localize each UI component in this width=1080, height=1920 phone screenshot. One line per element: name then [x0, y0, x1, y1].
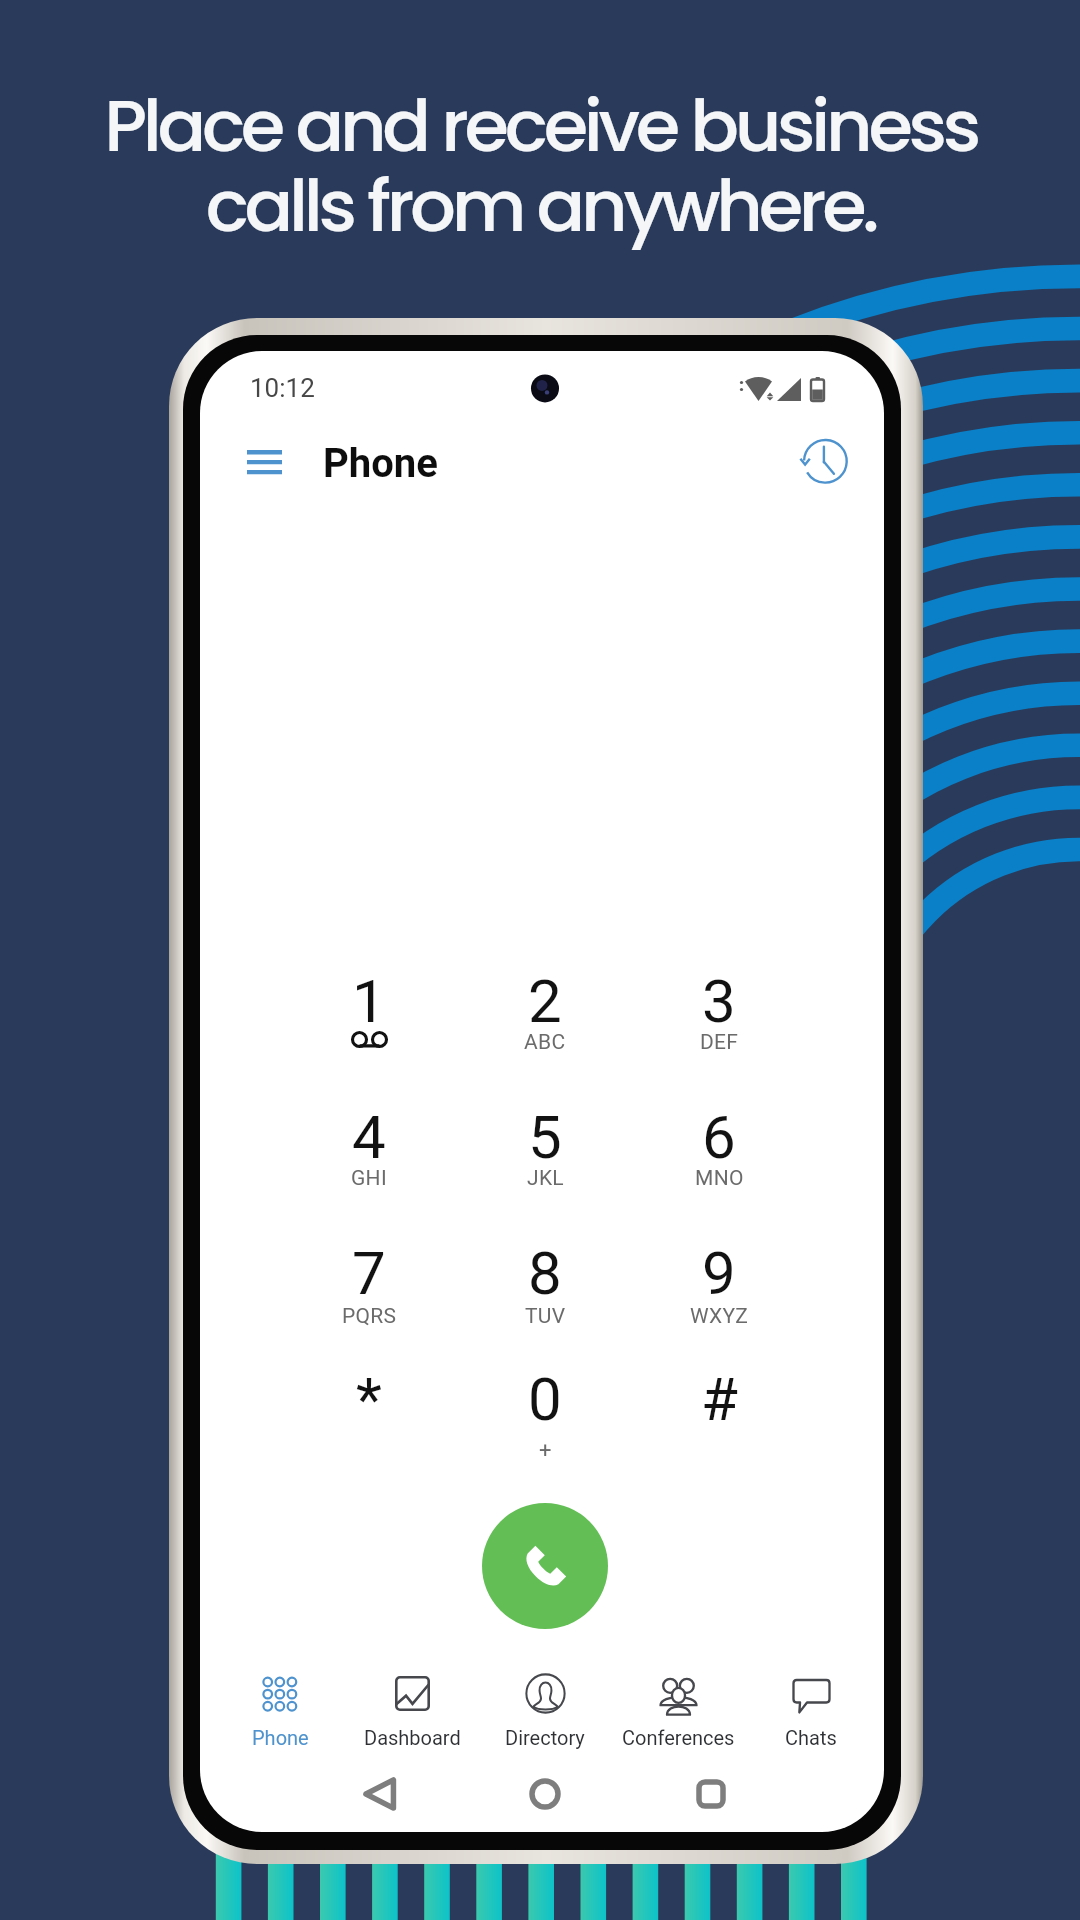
- staticText: 1: [352, 966, 386, 1036]
- staticText: Conferences: [622, 1726, 735, 1749]
- staticText: JKL: [527, 1166, 564, 1191]
- button[interactable]: 2: [467, 960, 623, 1086]
- button[interactable]: 9: [641, 1232, 797, 1358]
- button[interactable]: 7: [291, 1232, 447, 1358]
- staticText: 0: [528, 1364, 562, 1434]
- staticText: ABC: [524, 1030, 566, 1055]
- staticText: 7: [352, 1238, 386, 1308]
- button[interactable]: Call: [482, 1503, 608, 1629]
- staticText: WXYZ: [690, 1304, 749, 1329]
- button[interactable]: Back: [350, 1764, 410, 1824]
- button[interactable]: Menu: [233, 431, 295, 493]
- staticText: GHI: [351, 1166, 387, 1191]
- button[interactable]: Phone: [208, 1664, 352, 1758]
- button[interactable]: 5: [467, 1096, 623, 1222]
- button[interactable]: Recents: [681, 1764, 741, 1824]
- staticText: #: [701, 1364, 738, 1434]
- button[interactable]: 1: [291, 960, 447, 1086]
- button[interactable]: 6: [641, 1096, 797, 1222]
- staticText: Phone: [323, 440, 438, 487]
- staticText: 8: [528, 1238, 562, 1308]
- staticText: 6: [702, 1102, 736, 1172]
- button[interactable]: 3: [641, 960, 797, 1086]
- staticText: 4: [352, 1102, 386, 1172]
- button[interactable]: Directory: [473, 1664, 617, 1758]
- button[interactable]: #: [641, 1358, 797, 1484]
- staticText: PQRS: [342, 1304, 397, 1329]
- staticText: +: [539, 1438, 552, 1464]
- button[interactable]: Dashboard: [340, 1664, 484, 1758]
- staticText: Directory: [505, 1726, 585, 1749]
- staticText: 5: [528, 1102, 562, 1172]
- staticText: DEF: [700, 1030, 739, 1055]
- staticText: TUV: [525, 1304, 566, 1329]
- staticText: MNO: [695, 1166, 744, 1191]
- button[interactable]: Call history: [793, 429, 857, 493]
- staticText: Phone: [252, 1726, 309, 1749]
- staticText: Place and receive business calls from an…: [104, 75, 977, 257]
- staticText: Dashboard: [364, 1726, 461, 1749]
- staticText: 2: [528, 966, 562, 1036]
- button[interactable]: Home: [515, 1764, 575, 1824]
- staticText: *: [356, 1364, 382, 1434]
- staticText: 10:12: [250, 373, 315, 403]
- staticText: 9: [702, 1238, 736, 1308]
- button[interactable]: *: [291, 1358, 447, 1484]
- button[interactable]: Chats: [739, 1664, 883, 1758]
- staticText: Chats: [785, 1726, 837, 1749]
- button[interactable]: 0: [467, 1358, 623, 1484]
- button[interactable]: 4: [291, 1096, 447, 1222]
- button[interactable]: Conferences: [606, 1664, 750, 1758]
- button[interactable]: 8: [467, 1232, 623, 1358]
- staticText: 3: [702, 966, 736, 1036]
